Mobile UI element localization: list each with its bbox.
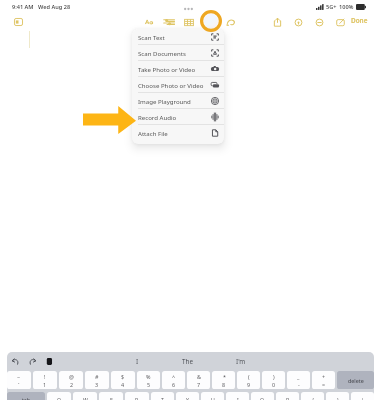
staticText: ( [248, 373, 250, 380]
button[interactable]: New note [336, 18, 345, 27]
button[interactable]: Image Playground [132, 93, 224, 109]
button[interactable]: Markup [226, 18, 236, 27]
staticText: ) [273, 373, 275, 380]
button[interactable]: ! [33, 371, 57, 389]
button[interactable]: % [137, 371, 160, 389]
staticText: Wed Aug 28 [38, 3, 71, 11]
staticText: 4 [121, 381, 125, 388]
staticText: I [136, 357, 139, 366]
button[interactable]: U [201, 392, 224, 400]
button[interactable]: _ [287, 371, 310, 389]
staticText: { [312, 396, 314, 400]
staticText: - [298, 381, 300, 388]
button[interactable]: $ [111, 371, 135, 389]
button[interactable]: Choose Photo or Video [132, 77, 224, 93]
button[interactable]: T [151, 392, 174, 400]
button[interactable]: Attach File [132, 125, 224, 141]
staticText: 5 [147, 381, 151, 388]
button[interactable]: ~ [7, 371, 31, 389]
button[interactable]: Take Photo or Video [132, 61, 224, 77]
staticText: Y [186, 396, 189, 400]
staticText: Attach File [138, 129, 168, 137]
staticText: ! [44, 373, 46, 380]
button[interactable]: Table [184, 18, 194, 27]
staticText: 9:41 AM [12, 3, 34, 11]
button[interactable]: The [173, 352, 201, 371]
staticText: ^ [172, 373, 176, 380]
staticText: + [322, 373, 326, 380]
staticText: @ [69, 373, 74, 380]
staticText: = [322, 381, 326, 388]
button[interactable]: Text format [145, 18, 154, 26]
button[interactable]: Paste [45, 357, 54, 366]
button[interactable]: { [301, 392, 324, 400]
staticText: Image Playground [138, 97, 191, 105]
button[interactable]: Undo [11, 357, 20, 366]
button[interactable]: & [187, 371, 210, 389]
staticText: T [161, 396, 164, 400]
staticText: 100% [339, 3, 354, 11]
staticText: Record Audio [138, 113, 177, 121]
button[interactable]: I [226, 392, 249, 400]
button[interactable]: # [85, 371, 109, 389]
button[interactable]: ( [237, 371, 260, 389]
button[interactable]: O [251, 392, 274, 400]
staticText: 5G+ [326, 3, 337, 11]
button[interactable]: Record Audio [132, 109, 224, 125]
staticText: * [223, 373, 226, 380]
staticText: 3 [95, 381, 99, 388]
staticText: Choose Photo or Video [138, 81, 204, 89]
button[interactable]: P [276, 392, 299, 400]
button[interactable]: More [315, 18, 324, 27]
button[interactable]: | [351, 392, 374, 400]
staticText: ~ [17, 373, 21, 380]
button[interactable]: } [326, 392, 349, 400]
button[interactable]: Attach [200, 10, 222, 32]
button[interactable]: Scan Text [132, 29, 224, 45]
staticText: Scan Documents [138, 49, 186, 57]
staticText: 2 [70, 381, 74, 388]
button[interactable]: E [99, 392, 123, 400]
staticText: $ [121, 373, 125, 380]
staticText: The [182, 357, 193, 366]
staticText: I'm [236, 357, 246, 366]
button[interactable]: I'm [227, 352, 255, 371]
button[interactable]: ^ [162, 371, 185, 389]
button[interactable]: Redo [28, 357, 37, 366]
button[interactable]: Y [176, 392, 199, 400]
button[interactable]: tab [7, 392, 45, 400]
staticText: I [237, 396, 239, 400]
button[interactable]: Lock note [294, 18, 303, 27]
button[interactable]: Scan Documents [132, 45, 224, 61]
button[interactable]: Paragraph style [163, 18, 175, 26]
staticText: O [260, 396, 265, 400]
staticText: Done [351, 16, 368, 25]
staticText: Q [57, 396, 62, 400]
button[interactable]: delete [337, 371, 374, 389]
staticText: & [197, 373, 201, 380]
button[interactable]: Q [47, 392, 71, 400]
staticText: 9 [247, 381, 251, 388]
staticText: ` [18, 381, 20, 388]
button[interactable]: @ [59, 371, 83, 389]
staticText: 8 [222, 381, 226, 388]
staticText: 0 [272, 381, 276, 388]
staticText: P [286, 396, 290, 400]
button[interactable]: + [312, 371, 335, 389]
staticText: 1 [43, 381, 47, 388]
staticText: 6 [172, 381, 176, 388]
staticText: Take Photo or Video [138, 65, 196, 73]
button[interactable]: ) [262, 371, 285, 389]
button[interactable]: Done [351, 15, 368, 26]
button[interactable]: Show sidebar [14, 18, 23, 26]
button[interactable]: * [212, 371, 235, 389]
staticText: delete [348, 377, 364, 384]
button[interactable]: W [73, 392, 97, 400]
button[interactable]: R [125, 392, 149, 400]
staticText: # [95, 373, 99, 380]
button[interactable]: I [123, 352, 151, 371]
staticText: R [135, 396, 139, 400]
staticText: W [83, 396, 88, 400]
button[interactable]: Share [273, 17, 282, 27]
staticText: 7 [197, 381, 201, 388]
